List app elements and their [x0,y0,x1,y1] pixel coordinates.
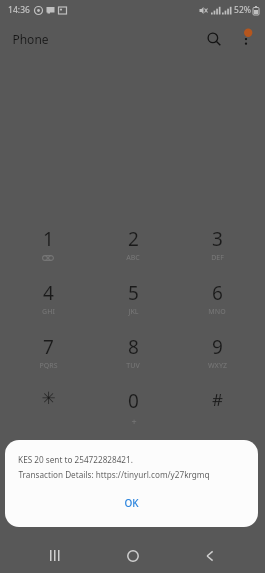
staticText: 0 [128,388,139,414]
button[interactable]: 7 [12,334,84,388]
button[interactable]: # [181,388,253,442]
button[interactable]: 2 [97,226,169,280]
staticText: ✳ [41,388,56,408]
button[interactable]: Phone [12,31,49,47]
button[interactable]: Recent apps [33,538,77,573]
staticText: GHI [42,307,55,317]
staticText: OK [124,496,139,510]
staticText: DEF [211,253,224,263]
staticText: 9 [212,334,223,360]
button[interactable]: 9 [181,334,253,388]
button[interactable]: More options [233,26,259,52]
staticText: # [212,388,223,411]
staticText: 8 [128,334,139,360]
staticText: WXYZ [208,361,227,371]
button[interactable]: Search [201,26,227,52]
button[interactable]: 8 [97,334,169,388]
staticText: + [131,415,137,427]
staticText: TUV [126,361,140,371]
button[interactable]: 6 [181,280,253,334]
button[interactable]: OK [108,493,155,513]
staticText: 4 [43,280,54,306]
staticText: 2 [128,226,139,252]
button[interactable]: ✳ [12,388,84,442]
button[interactable]: Back [188,538,232,573]
staticText: PQRS [39,361,58,371]
button[interactable]: Home [111,538,155,573]
staticText: 3 [212,226,223,252]
staticText: JKL [128,307,139,317]
button[interactable]: 5 [97,280,169,334]
button[interactable]: 3 [181,226,253,280]
button[interactable]: 4 [12,280,84,334]
staticText: 7 [43,334,54,360]
staticText: 52% [234,4,251,16]
staticText: 6 [212,280,223,306]
button[interactable]: 1 [12,226,84,280]
staticText: KES 20 sent to 254722828421. [18,454,133,465]
button[interactable]: 0 [97,388,169,442]
staticText: 1 [43,226,54,252]
staticText: 5 [128,280,139,306]
staticText: Phone [12,31,49,47]
staticText: 14:36 [8,4,30,16]
staticText: MNO [208,307,226,317]
staticText: ABC [126,253,140,263]
staticText: Transaction Details: https://tinyurl.com… [18,469,210,480]
